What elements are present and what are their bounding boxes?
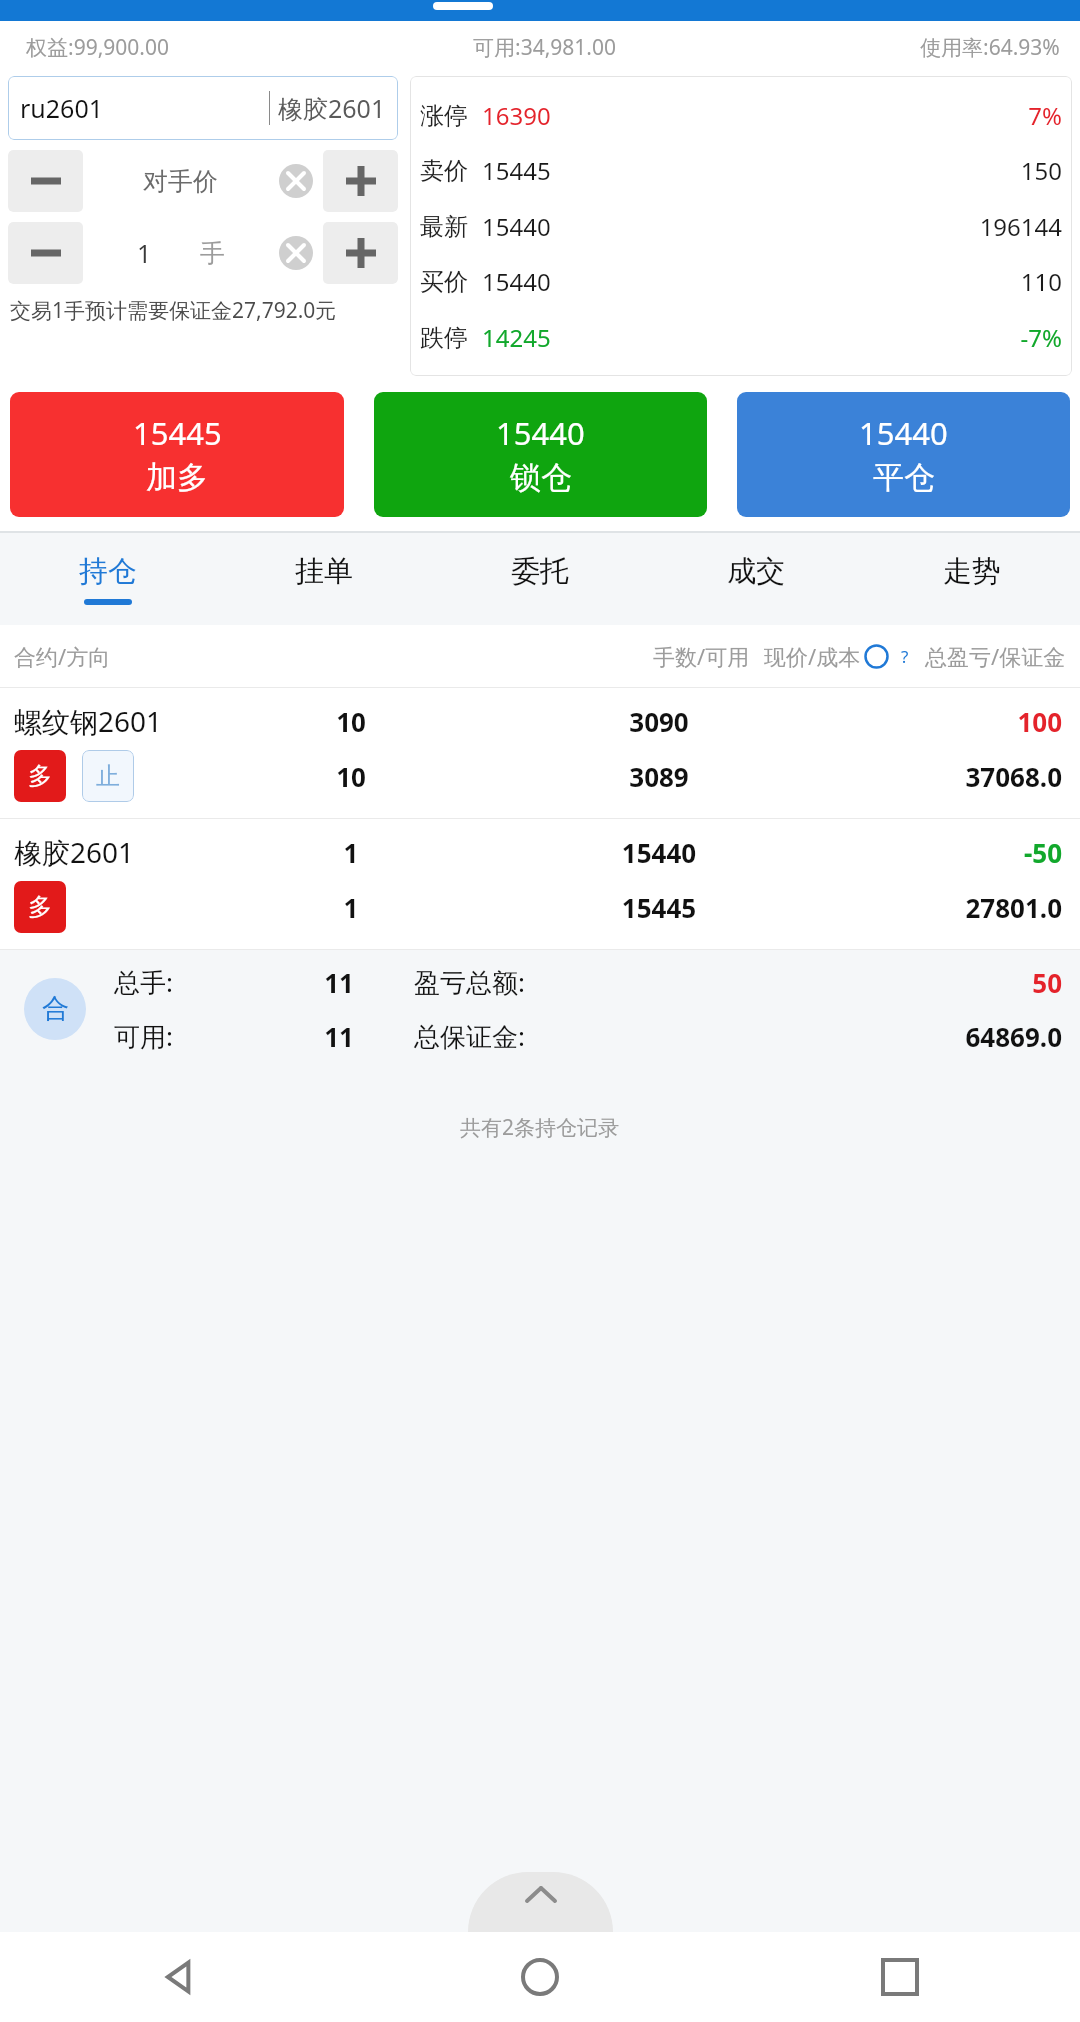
button[interactable]: 减少 xyxy=(8,222,83,284)
staticText: 15440 xyxy=(426,835,892,870)
staticText: 委托 xyxy=(511,553,569,590)
staticText: ru2601 xyxy=(20,91,103,125)
button[interactable]: 主页 xyxy=(360,1932,720,2022)
staticText: 锁仓 xyxy=(510,458,572,497)
staticText: 10 xyxy=(276,759,426,794)
staticText: 可用: xyxy=(114,1018,264,1054)
staticText: 37068.0 xyxy=(892,759,1062,794)
staticText: ? xyxy=(901,645,909,668)
button[interactable]: 清除 xyxy=(279,236,313,270)
staticText: 总盈亏/保证金 xyxy=(925,641,1066,671)
button[interactable]: 增加 xyxy=(323,222,398,284)
staticText: 7% xyxy=(772,99,1062,132)
staticText: 使用率:64.93% xyxy=(920,33,1060,62)
staticText: 15445 xyxy=(482,154,772,187)
staticText: 3090 xyxy=(426,704,892,739)
button[interactable]: 橡胶2601 xyxy=(0,819,1080,950)
staticText: 对手价 xyxy=(143,166,218,197)
staticText: 手 xyxy=(200,238,225,269)
staticText: 最新 xyxy=(420,212,482,242)
staticText: 27801.0 xyxy=(892,890,1062,925)
staticText: 买价 xyxy=(420,267,482,297)
staticText: 加多 xyxy=(146,458,208,497)
staticText: 15445 xyxy=(133,412,222,454)
button[interactable]: 返回 xyxy=(0,1932,360,2022)
staticText: 15440 xyxy=(496,412,585,454)
staticText: 100 xyxy=(892,704,1062,739)
button[interactable]: 成交 xyxy=(648,533,864,625)
staticText: -50 xyxy=(892,835,1062,870)
staticText: 50 xyxy=(912,965,1062,1000)
button[interactable]: 止 xyxy=(82,750,134,802)
staticText: 总保证金: xyxy=(414,1018,912,1054)
staticText: 11 xyxy=(264,965,414,1000)
button[interactable]: 展开 xyxy=(468,1872,613,1932)
staticText: 交易1手预计需要保证金27,792.0元 xyxy=(10,296,337,325)
staticText: 11 xyxy=(264,1019,414,1054)
staticText: 14245 xyxy=(482,321,772,354)
staticText: 196144 xyxy=(772,210,1062,243)
staticText: 螺纹钢2601 xyxy=(14,702,276,740)
staticText: 15440 xyxy=(859,412,948,454)
staticText: 持仓 xyxy=(79,553,137,590)
button[interactable]: 委托 xyxy=(432,533,648,625)
staticText: 合约/方向 xyxy=(14,641,204,671)
staticText: -7% xyxy=(772,321,1062,354)
button[interactable]: 螺纹钢2601 xyxy=(0,688,1080,819)
button[interactable]: 减少 xyxy=(8,150,83,212)
button[interactable]: 挂单 xyxy=(216,533,432,625)
staticText: 走势 xyxy=(943,553,1001,590)
staticText: 1 xyxy=(137,236,152,270)
staticText: 1 xyxy=(276,890,426,925)
staticText: 1 xyxy=(276,835,426,870)
staticText: 150 xyxy=(772,154,1062,187)
staticText: 16390 xyxy=(482,99,772,132)
button[interactable]: 增加 xyxy=(323,150,398,212)
button[interactable]: 15440 xyxy=(737,392,1070,517)
staticText: 跌停 xyxy=(420,323,482,353)
button[interactable]: 1 xyxy=(83,222,323,284)
staticText: 64869.0 xyxy=(912,1019,1062,1054)
staticText: 盈亏总额: xyxy=(414,964,912,1000)
staticText: 现价/成本 xyxy=(764,641,861,671)
staticText: 15440 xyxy=(482,265,772,298)
staticText: 合 xyxy=(42,992,69,1026)
button[interactable]: 持仓 xyxy=(0,533,216,625)
button[interactable]: 清除 xyxy=(279,164,313,198)
button[interactable]: ru2601 xyxy=(8,76,398,140)
staticText: 10 xyxy=(276,704,426,739)
staticText: 成交 xyxy=(727,553,785,590)
button[interactable]: 走势 xyxy=(864,533,1080,625)
button[interactable]: 15440 xyxy=(374,392,707,517)
staticText: 15445 xyxy=(426,890,892,925)
staticText: 总手: xyxy=(114,964,264,1000)
staticText: 110 xyxy=(772,265,1062,298)
staticText: 共有2条持仓记录 xyxy=(460,1113,620,1142)
button[interactable]: 涨停 xyxy=(420,76,1062,376)
staticText: 卖价 xyxy=(420,156,482,186)
staticText: 多 xyxy=(28,761,52,791)
staticText: 手数/可用 xyxy=(653,641,750,671)
staticText: 橡胶2601 xyxy=(278,91,386,125)
button[interactable]: 对手价 xyxy=(83,150,323,212)
staticText: 平仓 xyxy=(873,458,935,497)
staticText: 挂单 xyxy=(295,553,353,590)
staticText: 可用:34,981.00 xyxy=(473,33,616,62)
staticText: 多 xyxy=(28,892,52,922)
button[interactable]: 15445 xyxy=(10,392,344,517)
staticText: 3089 xyxy=(426,759,892,794)
staticText: 橡胶2601 xyxy=(14,833,276,871)
staticText: 涨停 xyxy=(420,101,482,131)
staticText: 15440 xyxy=(482,210,772,243)
staticText: 权益:99,900.00 xyxy=(26,33,169,62)
staticText: 止 xyxy=(96,761,120,791)
button[interactable]: 最近任务 xyxy=(720,1932,1080,2022)
